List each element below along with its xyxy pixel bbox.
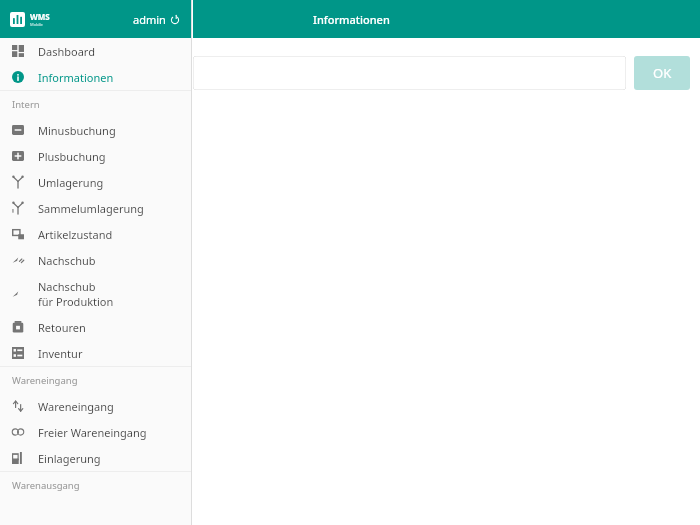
staticText: Plusbuchung (38, 149, 106, 164)
button[interactable]: Sammelumlagerung (0, 195, 191, 221)
button[interactable]: Wareneingang (0, 393, 191, 419)
button[interactable]: Inventur (0, 340, 191, 366)
staticText: Inventur (38, 346, 83, 361)
staticText: OK (653, 64, 672, 82)
button[interactable]: Minusbuchung (0, 117, 191, 143)
button[interactable]: Umlagerung (0, 169, 191, 195)
staticText: Intern (12, 98, 40, 111)
button[interactable]: Retouren (0, 314, 191, 340)
staticText: Informationen (313, 12, 390, 27)
button[interactable]: admin (130, 9, 183, 30)
staticText: Minusbuchung (38, 123, 116, 138)
staticText: Freier Wareneingang (38, 425, 147, 440)
staticText: Nachschub (38, 253, 96, 268)
button[interactable]: Einlagerung (0, 445, 191, 471)
staticText: Wareneingang (38, 399, 114, 414)
staticText: Informationen (38, 70, 114, 85)
button[interactable]: OK (634, 56, 690, 90)
button[interactable]: Artikelzustand (0, 221, 191, 247)
button[interactable]: Plusbuchung (0, 143, 191, 169)
staticText: WMS (30, 11, 50, 22)
staticText: Sammelumlagerung (38, 201, 144, 216)
staticText: Artikelzustand (38, 227, 113, 242)
button[interactable] (193, 56, 626, 90)
button[interactable]: Dashboard (0, 38, 191, 64)
staticText: Wareneingang (12, 374, 78, 387)
staticText: Dashboard (38, 44, 95, 59)
button[interactable]: Informationen (0, 64, 191, 90)
other: Refresh (170, 15, 180, 25)
button[interactable]: Nachschub für Produktion (0, 273, 191, 314)
button[interactable]: Nachschub (0, 247, 191, 273)
staticText: Retouren (38, 320, 86, 335)
staticText: Mobile (30, 22, 43, 27)
staticText: admin (133, 12, 166, 27)
staticText: Umlagerung (38, 175, 104, 190)
button[interactable]: WMS (8, 9, 52, 29)
staticText: Einlagerung (38, 451, 101, 466)
staticText: Warenausgang (12, 479, 80, 492)
button[interactable]: Freier Wareneingang (0, 419, 191, 445)
staticText: Nachschub für Produktion (38, 279, 114, 309)
